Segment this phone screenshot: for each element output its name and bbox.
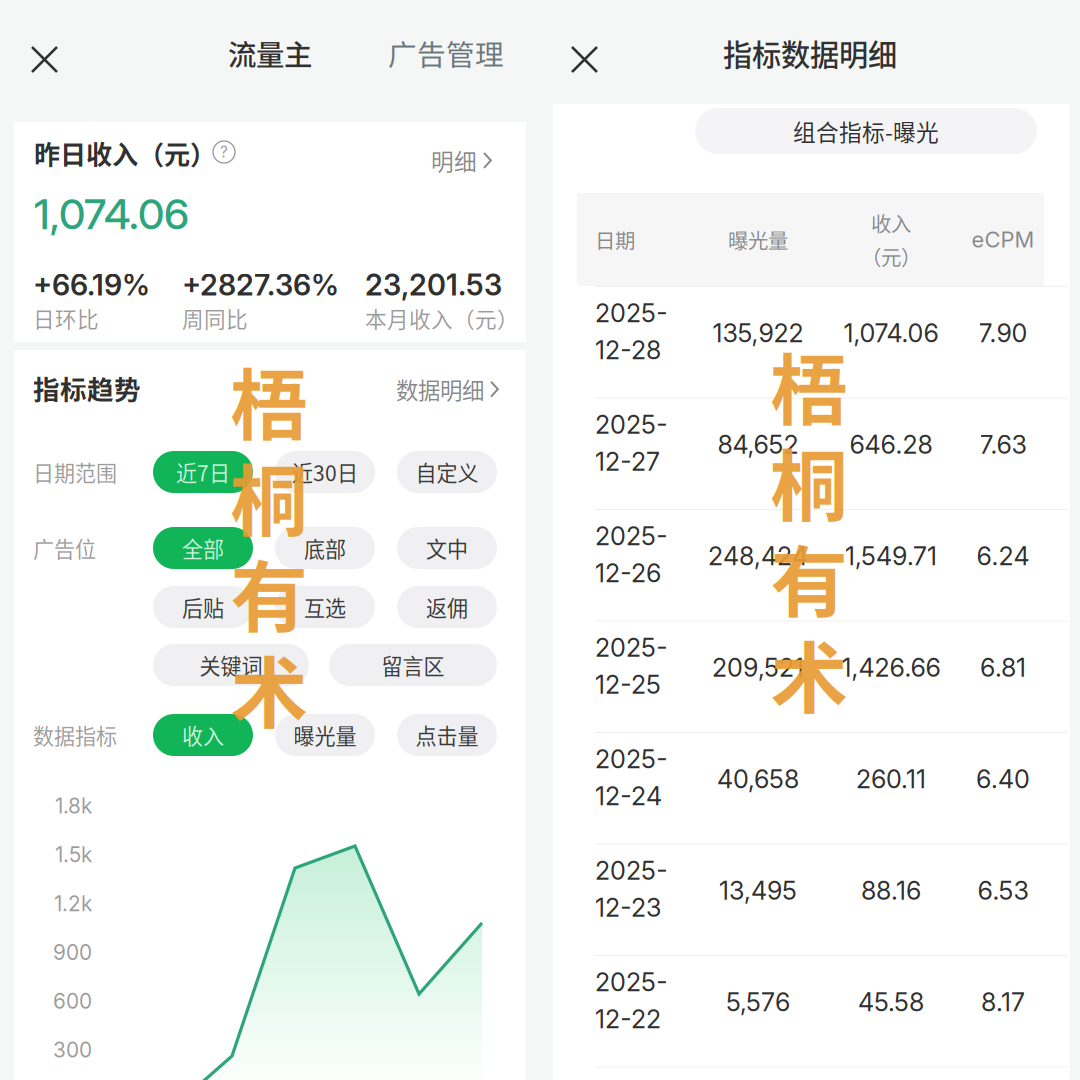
staticText: 曝光量 xyxy=(293,720,356,750)
staticText: 12-24 xyxy=(595,781,662,811)
staticText: 自定义 xyxy=(415,457,478,487)
button[interactable]: 收入 xyxy=(153,714,253,756)
staticText: 6.81 xyxy=(980,652,1026,683)
staticText: 文中 xyxy=(426,533,468,563)
staticText: eCPM xyxy=(971,226,1034,253)
button[interactable]: 留言区 xyxy=(329,644,497,686)
button[interactable]: 后贴 xyxy=(153,586,253,628)
staticText: 广告管理 xyxy=(388,32,504,74)
staticText: 300 xyxy=(53,1037,92,1063)
staticText: ? xyxy=(220,143,228,161)
staticText: 本月收入（元） xyxy=(365,302,519,334)
staticText: 209,521 xyxy=(712,652,804,683)
staticText: 明细 xyxy=(431,144,477,177)
staticText: 7.63 xyxy=(979,429,1026,460)
staticText: 互选 xyxy=(304,592,346,622)
staticText: 6.40 xyxy=(976,764,1030,794)
staticText: 12-25 xyxy=(595,669,661,700)
staticText: 5,576 xyxy=(726,987,790,1017)
staticText: 12-23 xyxy=(595,892,661,923)
button[interactable]: 曝光量 xyxy=(275,714,375,756)
staticText: +66.19% xyxy=(33,267,150,303)
staticText: 12-28 xyxy=(595,335,661,365)
button[interactable]: 关键词 xyxy=(153,644,309,686)
staticText: 1,074.06 xyxy=(34,189,189,239)
staticText: 45.58 xyxy=(858,987,924,1017)
staticText: 指标趋势 xyxy=(33,369,141,407)
staticText: 2025- xyxy=(595,967,667,997)
staticText: 12-26 xyxy=(595,558,661,588)
staticText: 260.11 xyxy=(856,764,926,794)
button[interactable]: 广告管理 xyxy=(388,36,512,70)
staticText: 2025- xyxy=(595,409,667,440)
staticText: 12-27 xyxy=(595,446,660,477)
staticText: 6.24 xyxy=(976,541,1029,571)
button[interactable]: 文中 xyxy=(397,527,497,569)
staticText: 数据指标 xyxy=(33,720,117,750)
button[interactable]: 点击量 xyxy=(397,714,497,756)
staticText: 1,549.71 xyxy=(845,541,937,571)
button[interactable]: 互选 xyxy=(275,586,375,628)
staticText: 近7日 xyxy=(176,457,230,487)
staticText: 有 xyxy=(230,536,307,648)
staticText: 底部 xyxy=(304,533,346,563)
button[interactable]: 明细 xyxy=(428,141,496,180)
staticText: 日环比 xyxy=(33,302,99,334)
staticText: 数据明细 xyxy=(396,373,484,405)
staticText: 1.2k xyxy=(54,891,92,916)
staticText: 关键词 xyxy=(199,650,262,680)
staticText: 收入 xyxy=(871,208,911,237)
staticText: 1.5k xyxy=(55,842,92,867)
button[interactable]: 近30日 xyxy=(275,451,375,493)
staticText: 指标数据明细 xyxy=(723,32,897,74)
staticText: 曝光量 xyxy=(728,225,788,254)
staticText: 流量主 xyxy=(228,32,312,73)
staticText: 8.17 xyxy=(981,987,1025,1017)
staticText: 周同比 xyxy=(182,302,248,334)
staticText: 桐 xyxy=(770,425,847,537)
staticText: 梧 xyxy=(230,344,307,456)
button[interactable]: 底部 xyxy=(275,527,375,569)
staticText: 收入 xyxy=(182,720,224,750)
staticText: 日期 xyxy=(595,225,635,254)
button[interactable]: 自定义 xyxy=(397,451,497,493)
staticText: 梧 xyxy=(770,329,847,441)
staticText: 135,922 xyxy=(712,318,803,348)
staticText: 7.90 xyxy=(978,318,1027,348)
staticText: +2827.36% xyxy=(182,267,339,303)
staticText: 2025- xyxy=(595,521,667,551)
staticText: 术 xyxy=(770,617,847,729)
staticText: 84,652 xyxy=(717,429,798,460)
staticText: 1.8k xyxy=(55,793,92,819)
staticText: 2025- xyxy=(595,744,667,774)
button[interactable]: 返佣 xyxy=(397,586,497,628)
button[interactable]: 近7日 xyxy=(153,451,253,493)
staticText: 6.53 xyxy=(977,875,1028,906)
staticText: （元） xyxy=(861,241,921,271)
staticText: 术 xyxy=(230,632,307,744)
staticText: 88.16 xyxy=(861,875,921,906)
staticText: 全部 xyxy=(182,533,224,563)
staticText: 1,074.06 xyxy=(843,318,938,348)
staticText: 13,495 xyxy=(719,875,797,906)
staticText: 返佣 xyxy=(426,592,468,622)
staticText: 昨日收入（元） xyxy=(34,134,216,172)
button[interactable]: 关闭 xyxy=(565,40,604,79)
staticText: 桐 xyxy=(230,440,307,552)
button[interactable]: 数据明细 xyxy=(393,370,503,408)
button[interactable]: 全部 xyxy=(153,527,253,569)
staticText: 后贴 xyxy=(182,592,224,622)
button[interactable]: 组合指标-曝光 xyxy=(695,108,1037,154)
staticText: 2025- xyxy=(595,298,667,328)
staticText: 2025- xyxy=(595,632,667,663)
staticText: 1,426.66 xyxy=(841,652,940,683)
staticText: 23,201.53 xyxy=(365,267,502,303)
staticText: 2025- xyxy=(595,855,667,886)
button[interactable]: 关闭 xyxy=(25,40,64,79)
staticText: 日期范围 xyxy=(33,457,117,487)
staticText: 646.28 xyxy=(849,429,932,460)
staticText: 组合指标-曝光 xyxy=(793,115,939,147)
staticText: 广告位 xyxy=(33,533,96,563)
staticText: 近30日 xyxy=(292,457,358,487)
staticText: 248,424 xyxy=(708,541,808,571)
